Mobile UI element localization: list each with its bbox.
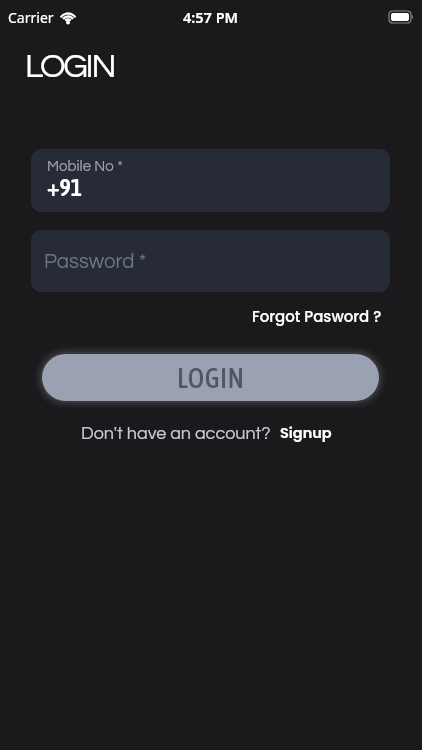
staticText: Carrier	[8, 8, 54, 27]
button[interactable]: Password *	[31, 230, 390, 292]
staticText: Don't have an account?	[81, 424, 271, 443]
staticText: Mobile No *	[47, 159, 123, 174]
button[interactable]: Forgot Pasword ?	[252, 306, 382, 327]
staticText: Password *	[44, 251, 147, 272]
button[interactable]: LOGIN	[42, 354, 379, 401]
staticText: +91	[47, 174, 83, 202]
button[interactable]: Signup	[280, 423, 332, 443]
button[interactable]: Mobile No *	[31, 149, 390, 212]
staticText: LOGIN	[177, 362, 245, 394]
staticText: LOGIN	[25, 49, 115, 84]
staticText: 4:57 PM	[183, 7, 239, 27]
